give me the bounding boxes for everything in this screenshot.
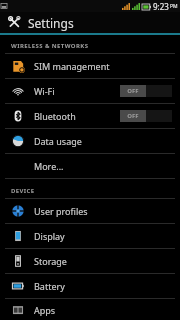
staticText: Bluetooth [34, 110, 76, 122]
button[interactable]: Bluetooth [0, 104, 180, 128]
staticText: 9:23 [153, 1, 169, 12]
button[interactable]: More... [0, 154, 180, 178]
button[interactable]: Data usage [0, 129, 180, 153]
other: Settings [8, 16, 21, 29]
staticText: Display [34, 230, 65, 242]
staticText: User profiles [34, 205, 88, 217]
staticText: More... [34, 160, 64, 172]
button[interactable]: SIM management [0, 54, 180, 78]
button[interactable]: User profiles [0, 199, 180, 223]
staticText: Settings [28, 15, 74, 31]
button[interactable]: Apps [0, 299, 180, 320]
staticText: WIRELESS & NETWORKS [11, 42, 89, 50]
button[interactable]: Settings [0, 12, 180, 33]
staticText: Storage [34, 255, 67, 267]
staticText: Wi-Fi [34, 85, 55, 97]
staticText: DEVICE [11, 187, 35, 195]
button[interactable]: Wi-Fi [0, 79, 180, 103]
button[interactable]: Battery [0, 274, 180, 298]
button[interactable]: OFF [120, 85, 172, 97]
staticText: Battery [34, 280, 65, 292]
staticText: OFF [127, 87, 139, 95]
staticText: OFF [127, 112, 139, 120]
button[interactable]: Storage [0, 249, 180, 273]
staticText: Apps [34, 304, 56, 316]
staticText: Data usage [34, 135, 82, 147]
button[interactable]: OFF [120, 110, 172, 122]
staticText: SIM management [34, 60, 110, 72]
button[interactable]: Display [0, 224, 180, 248]
staticText: PM [170, 3, 178, 10]
